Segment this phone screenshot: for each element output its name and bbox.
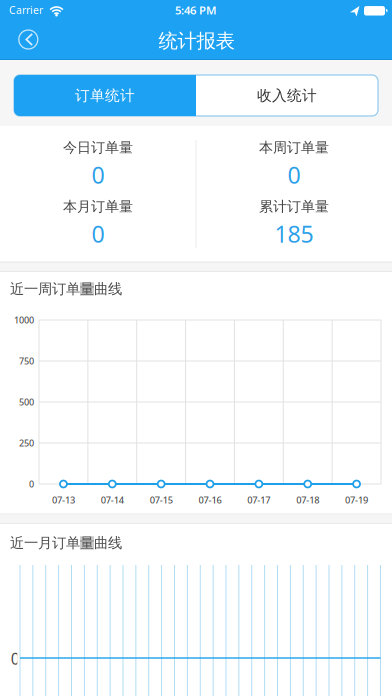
staticText: 0 bbox=[91, 218, 104, 250]
staticText: 07-18 bbox=[296, 494, 319, 506]
button[interactable]: Back bbox=[14, 25, 42, 53]
staticText: 0 bbox=[91, 159, 104, 191]
staticText: 曲线 bbox=[94, 534, 122, 552]
staticText: 量 bbox=[80, 280, 94, 298]
staticText: 近一月订单 bbox=[10, 534, 80, 552]
staticText: 订单统计 bbox=[75, 86, 135, 105]
staticText: 500 bbox=[19, 396, 34, 408]
staticText: 07-19 bbox=[345, 494, 368, 506]
staticText: 07-17 bbox=[247, 494, 270, 506]
staticText: Carrier bbox=[9, 3, 43, 17]
staticText: 累计订单量 bbox=[259, 198, 329, 215]
button[interactable]: 订单统计 bbox=[14, 75, 196, 116]
staticText: 07-16 bbox=[198, 494, 221, 506]
staticText: 0 bbox=[29, 478, 34, 490]
staticText: 07-13 bbox=[52, 494, 75, 506]
button[interactable]: 收入统计 bbox=[196, 75, 378, 116]
staticText: 5:46 PM bbox=[175, 2, 217, 18]
staticText: 07-15 bbox=[150, 494, 173, 506]
staticText: 0 bbox=[287, 159, 300, 191]
staticText: 本月订单量 bbox=[63, 198, 133, 215]
staticText: 统计报表 bbox=[158, 29, 234, 53]
staticText: 1000 bbox=[14, 314, 34, 326]
staticText: 近一周订单 bbox=[10, 280, 80, 298]
staticText: 今日订单量 bbox=[63, 139, 133, 156]
staticText: 07-14 bbox=[101, 494, 124, 506]
staticText: 量 bbox=[80, 534, 94, 552]
staticText: 收入统计 bbox=[257, 86, 317, 105]
staticText: 750 bbox=[19, 355, 34, 367]
staticText: 曲线 bbox=[94, 280, 122, 298]
staticText: 0 bbox=[11, 648, 20, 669]
staticText: 本周订单量 bbox=[259, 139, 329, 156]
staticText: 250 bbox=[19, 437, 34, 449]
staticText: 185 bbox=[274, 218, 313, 250]
